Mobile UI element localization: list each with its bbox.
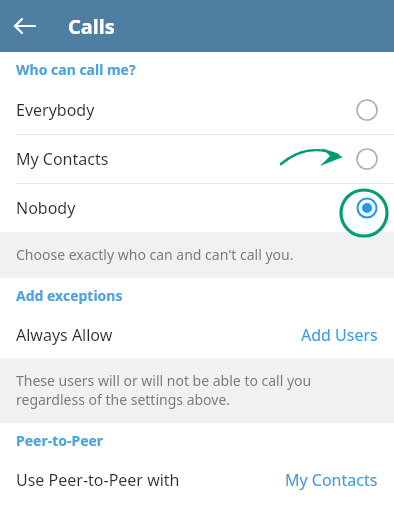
button[interactable]: Back [6,4,44,48]
button[interactable]: Always Allow [0,312,394,358]
button[interactable]: Everybody [0,86,394,134]
staticText: Everybody [16,99,95,121]
staticText: Always Allow [16,324,113,346]
button[interactable]: My Contacts [0,135,394,183]
staticText: Nobody [16,197,76,219]
staticText: Choose exactly who can and can't call yo… [16,245,294,264]
staticText: My Contacts [16,148,109,170]
staticText: Peer-to-Peer [16,431,104,450]
button[interactable]: Use Peer-to-Peer with [0,457,394,503]
staticText: My Contacts [285,469,378,491]
staticText: Use Peer-to-Peer with [16,469,180,491]
staticText: Who can call me? [16,60,136,79]
staticText: These users will or will not be able to … [16,371,372,409]
staticText: Add exceptions [16,286,123,305]
staticText: Add Users [301,324,378,346]
staticText: Calls [68,13,115,40]
button[interactable]: Nobody [0,184,394,232]
